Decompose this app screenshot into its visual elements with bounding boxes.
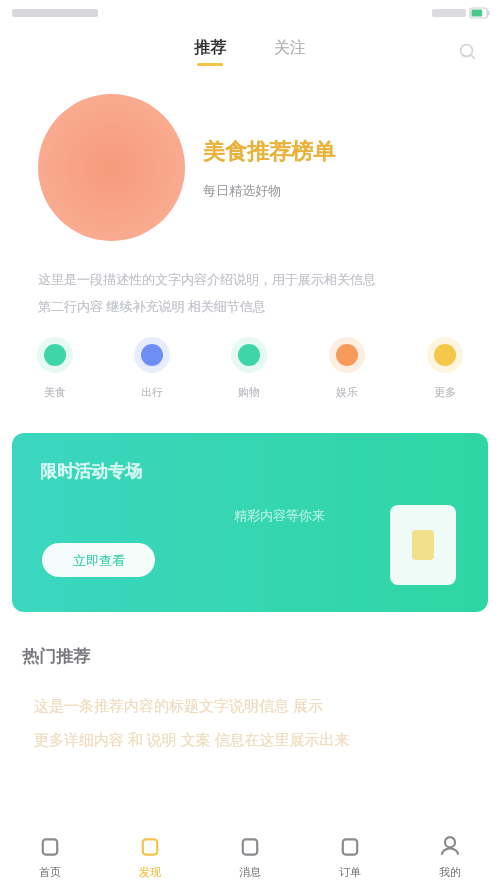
staticText: 发现 (139, 865, 161, 879)
staticText: 这里是一段描述性的文字内容介绍说明，用于展示相关信息 (38, 271, 376, 287)
staticText: 我的 (439, 865, 461, 879)
button[interactable]: 出行 (103, 331, 200, 405)
staticText: 每日精选好物 (203, 182, 281, 198)
button[interactable]: nav 2 (200, 825, 300, 889)
button[interactable]: nav 4 (400, 825, 500, 889)
button[interactable]: 关注 (268, 36, 312, 68)
button[interactable]: 限时活动专场 (12, 433, 488, 612)
staticText: 娱乐 (336, 385, 358, 399)
button[interactable]: 美食推荐榜单 (38, 94, 480, 241)
button[interactable]: 立即查看 (42, 543, 155, 577)
staticText: 出行 (141, 385, 163, 399)
staticText: 订单 (339, 865, 361, 879)
other: nav 1 (138, 835, 162, 859)
other: nav 4 (438, 835, 462, 859)
staticText: 首页 (39, 865, 61, 879)
button[interactable]: 购物 (200, 331, 298, 405)
staticText: 购物 (238, 385, 260, 399)
staticText: 第二行内容 继续补充说明 相关细节信息 (38, 297, 266, 315)
button[interactable]: 更多 (396, 331, 494, 405)
staticText: 精彩内容等你来 (234, 507, 325, 523)
button[interactable]: 推荐 (188, 36, 232, 68)
button[interactable]: 娱乐 (298, 331, 396, 405)
other: nav 2 (238, 835, 262, 859)
staticText: 关注 (274, 38, 306, 58)
staticText: 美食推荐榜单 (203, 138, 335, 166)
staticText: 这是一条推荐内容的标题文字说明信息 展示 (34, 695, 323, 715)
button[interactable]: nav 1 (100, 825, 200, 889)
staticText: 更多 (434, 385, 456, 399)
button[interactable]: 搜索 (452, 36, 484, 68)
other: nav 0 (38, 835, 62, 859)
other: nav 3 (338, 835, 362, 859)
staticText: 推荐 (194, 38, 226, 58)
staticText: 更多详细内容 和 说明 文案 信息在这里展示出来 (34, 729, 350, 749)
staticText: 限时活动专场 (40, 461, 142, 482)
staticText: 美食 (44, 385, 66, 399)
button[interactable]: 热门推荐 (22, 646, 500, 667)
staticText: 消息 (239, 865, 261, 879)
button[interactable]: 美食 (6, 331, 103, 405)
button[interactable]: nav 0 (0, 825, 100, 889)
button[interactable]: nav 3 (300, 825, 400, 889)
staticText: 热门推荐 (22, 646, 90, 667)
staticText: 立即查看 (73, 552, 125, 568)
